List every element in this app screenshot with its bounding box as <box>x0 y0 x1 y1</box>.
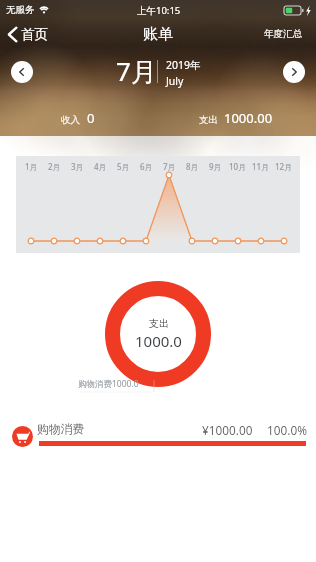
staticText: 购物消费 <box>37 422 85 437</box>
staticText: 首页 <box>21 26 48 43</box>
staticText: 收入 <box>61 114 80 126</box>
button[interactable]: 首页 <box>6 26 48 43</box>
staticText: 10月 <box>229 161 247 172</box>
staticText: 9月 <box>209 161 222 172</box>
button[interactable]: Next month <box>283 61 305 83</box>
staticText: 8月 <box>186 161 199 172</box>
staticText: 7月 <box>163 161 176 172</box>
button[interactable]: 年度汇总 <box>264 28 302 40</box>
staticText: 3月 <box>71 161 84 172</box>
staticText: 上午10:15 <box>137 4 181 17</box>
staticText: 支出 <box>149 317 169 330</box>
staticText: ¥1000.00 <box>202 422 253 438</box>
staticText: 1000.0 <box>135 331 182 351</box>
staticText: 2月 <box>48 161 61 172</box>
staticText: 账单 <box>143 25 173 44</box>
staticText: 0 <box>87 109 95 127</box>
button[interactable]: 购物消费 <box>0 417 316 457</box>
staticText: 2019年 <box>166 58 201 72</box>
button[interactable]: Previous month <box>11 61 33 83</box>
staticText: 1000.00 <box>224 109 273 127</box>
staticText: 100.0% <box>267 422 307 438</box>
staticText: 4月 <box>94 161 107 172</box>
staticText: 年度汇总 <box>264 28 302 40</box>
staticText: 无服务 <box>6 4 35 16</box>
staticText: 6月 <box>140 161 153 172</box>
staticText: 支出 <box>199 114 218 126</box>
staticText: 7月 <box>116 53 157 89</box>
staticText: 5月 <box>117 161 130 172</box>
staticText: 12月 <box>275 161 293 172</box>
staticText: 11月 <box>252 161 270 172</box>
staticText: July <box>166 74 184 88</box>
staticText: 购物消费1000.0 <box>78 378 139 390</box>
staticText: 1月 <box>25 161 38 172</box>
